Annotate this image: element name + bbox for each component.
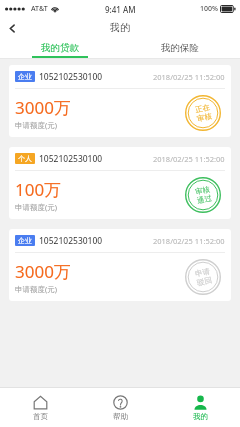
staticText: 1052102530100 — [39, 71, 103, 83]
staticText: 1052102530100 — [39, 153, 103, 165]
button[interactable]: 帮助 — [80, 388, 160, 427]
staticText: 企业 — [18, 72, 32, 81]
staticText: 100% — [200, 4, 218, 14]
staticText: 100万 — [15, 178, 62, 201]
staticText: 我的贷款 — [41, 42, 79, 54]
button[interactable]: 企业 — [9, 65, 231, 137]
staticText: 申请额度(元) — [15, 120, 57, 130]
staticText: 1052102530100 — [39, 235, 103, 247]
staticText: 企业 — [18, 236, 32, 245]
staticText: 首页 — [33, 412, 48, 421]
staticText: 我的 — [193, 412, 208, 421]
staticText: 2018/02/25 11:52:00 — [153, 236, 225, 246]
staticText: 申请额度(元) — [15, 202, 57, 212]
button[interactable]: 我的 — [160, 388, 240, 427]
staticText: 申请额度(元) — [15, 284, 57, 294]
staticText: 帮助 — [113, 412, 128, 421]
staticText: 2018/02/25 11:52:00 — [153, 154, 225, 164]
staticText: 审核 — [194, 185, 211, 196]
staticText: 驳回 — [196, 275, 213, 287]
button[interactable]: 企业 — [9, 229, 231, 301]
staticText: 3000万 — [15, 260, 71, 283]
staticText: 我的保险 — [161, 42, 199, 54]
button[interactable]: 我的贷款 — [0, 37, 120, 58]
staticText: AT&T — [31, 4, 48, 14]
staticText: 我的 — [110, 21, 130, 34]
button[interactable]: Back — [3, 19, 21, 37]
staticText: 正在 — [194, 103, 211, 114]
button[interactable]: 首页 — [0, 388, 80, 427]
staticText: 通过 — [196, 193, 213, 205]
staticText: 3000万 — [15, 96, 71, 119]
button[interactable]: 我的保险 — [120, 37, 240, 58]
staticText: 9:41 AM — [105, 4, 136, 15]
staticText: 2018/02/25 11:52:00 — [153, 72, 225, 82]
staticText: 申请 — [194, 267, 211, 278]
staticText: 个人 — [18, 154, 32, 163]
staticText: 审核 — [196, 111, 213, 123]
button[interactable]: 个人 — [9, 147, 231, 219]
